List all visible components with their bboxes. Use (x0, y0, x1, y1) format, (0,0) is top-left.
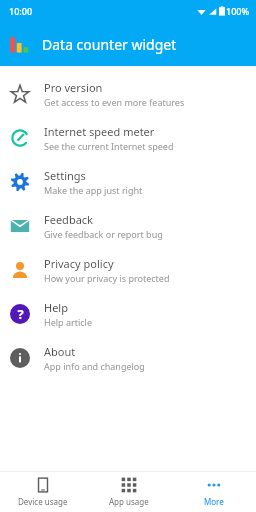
staticText: Feedback (44, 212, 93, 227)
staticText: Privacy policy (44, 256, 114, 271)
button[interactable]: App usage (86, 472, 171, 512)
staticText: Pro version (44, 80, 103, 95)
staticText: Make the app just right (44, 184, 143, 196)
other: More (206, 477, 222, 493)
button[interactable]: About (0, 336, 256, 380)
staticText: ? (17, 305, 24, 323)
button[interactable]: ? (0, 292, 256, 336)
button[interactable]: Settings (0, 160, 256, 204)
staticText: Data counter widget (42, 35, 177, 54)
staticText: About (44, 344, 76, 359)
other: Device usage (35, 477, 51, 493)
staticText: 100% (226, 5, 250, 17)
staticText: See the current Internet speed (44, 140, 174, 152)
staticText: 10:00 (9, 5, 33, 17)
other: App usage (121, 477, 137, 493)
staticText: How your privacy is protected (44, 272, 170, 284)
staticText: Help (44, 300, 68, 315)
button[interactable]: Feedback (0, 204, 256, 248)
button[interactable]: Internet speed meter (0, 116, 256, 160)
staticText: Help article (44, 316, 92, 328)
staticText: Internet speed meter (44, 124, 155, 139)
button[interactable]: More (171, 472, 256, 512)
staticText: Get access to even more features (44, 96, 185, 108)
staticText: Device usage (18, 496, 68, 507)
button[interactable]: Pro version (0, 72, 256, 116)
button[interactable]: Privacy policy (0, 248, 256, 292)
staticText: More (204, 496, 224, 507)
button[interactable]: Device usage (0, 472, 86, 512)
staticText: Give feedback or report bug (44, 228, 163, 240)
staticText: App info and changelog (44, 360, 145, 372)
staticText: Settings (44, 168, 86, 183)
staticText: App usage (109, 496, 149, 507)
